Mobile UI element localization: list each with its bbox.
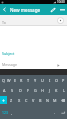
button[interactable]: J bbox=[46, 85, 53, 95]
button[interactable]: R bbox=[18, 75, 25, 85]
button[interactable]: , bbox=[9, 105, 15, 119]
staticText: G bbox=[34, 88, 37, 93]
staticText: V bbox=[32, 98, 35, 103]
button[interactable]: Send message bbox=[56, 63, 60, 67]
button[interactable]: Send bbox=[58, 4, 67, 15]
staticText: B bbox=[39, 98, 42, 103]
staticText: F bbox=[27, 88, 29, 93]
staticText: L bbox=[63, 88, 65, 93]
staticText: A bbox=[3, 88, 6, 93]
staticText: S bbox=[11, 88, 14, 93]
button[interactable]: . bbox=[52, 105, 58, 119]
staticText: R bbox=[20, 78, 23, 83]
button[interactable]: Z bbox=[7, 95, 15, 105]
button[interactable]: Back bbox=[0, 4, 9, 15]
button[interactable]: Shift bbox=[0, 96, 7, 104]
staticText: Q bbox=[2, 78, 5, 83]
staticText: N bbox=[46, 98, 49, 103]
button[interactable]: W bbox=[6, 75, 12, 85]
button[interactable]: X bbox=[15, 95, 23, 105]
button[interactable]: I bbox=[46, 75, 53, 85]
staticText: K bbox=[55, 88, 58, 93]
staticText: 123 bbox=[2, 110, 8, 115]
staticText: Message bbox=[2, 62, 17, 67]
staticText: 10:30 bbox=[57, 0, 65, 4]
button[interactable]: Attach bbox=[48, 4, 58, 15]
button[interactable]: H bbox=[39, 85, 46, 95]
button[interactable]: Enter bbox=[58, 105, 67, 119]
button[interactable]: Backspace bbox=[58, 95, 67, 105]
staticText: C bbox=[25, 98, 28, 103]
button[interactable]: L bbox=[60, 85, 67, 95]
button[interactable]: Add contact bbox=[57, 17, 64, 24]
staticText: To bbox=[2, 20, 6, 25]
staticText: O bbox=[55, 78, 58, 83]
staticText: X bbox=[18, 98, 21, 103]
staticText: H bbox=[41, 88, 44, 93]
button[interactable]: To bbox=[0, 15, 67, 26]
button[interactable]: S bbox=[8, 85, 16, 95]
staticText: J bbox=[49, 88, 51, 93]
staticText: Z bbox=[10, 98, 13, 103]
button[interactable]: Q bbox=[0, 75, 6, 85]
button[interactable]: G bbox=[32, 85, 39, 95]
staticText: M bbox=[53, 98, 57, 103]
staticText: P bbox=[62, 78, 65, 83]
staticText: Subject bbox=[2, 51, 15, 56]
button[interactable]: C bbox=[23, 95, 30, 105]
button[interactable]: A bbox=[0, 85, 8, 95]
button[interactable]: Y bbox=[32, 75, 39, 85]
staticText: Y bbox=[34, 78, 37, 83]
button[interactable]: D bbox=[16, 85, 24, 95]
button[interactable]: P bbox=[60, 75, 67, 85]
button[interactable]: M bbox=[51, 95, 58, 105]
staticText: D bbox=[19, 88, 22, 93]
staticText: U bbox=[41, 78, 44, 83]
button[interactable]: E bbox=[12, 75, 18, 85]
button[interactable]: V bbox=[30, 95, 37, 105]
staticText: . bbox=[54, 110, 56, 115]
button[interactable]: N bbox=[44, 95, 51, 105]
button[interactable]: F bbox=[24, 85, 32, 95]
button[interactable]: B bbox=[37, 95, 44, 105]
button[interactable]: U bbox=[39, 75, 46, 85]
staticText: T bbox=[27, 78, 30, 83]
staticText: W bbox=[7, 78, 11, 83]
button[interactable]: O bbox=[53, 75, 60, 85]
staticText: E bbox=[14, 78, 17, 83]
staticText: I bbox=[49, 78, 51, 83]
button[interactable]: 123 bbox=[0, 105, 9, 119]
button[interactable]: T bbox=[25, 75, 32, 85]
staticText: , bbox=[11, 110, 13, 115]
staticText: New message bbox=[10, 7, 41, 13]
button[interactable]: K bbox=[53, 85, 60, 95]
